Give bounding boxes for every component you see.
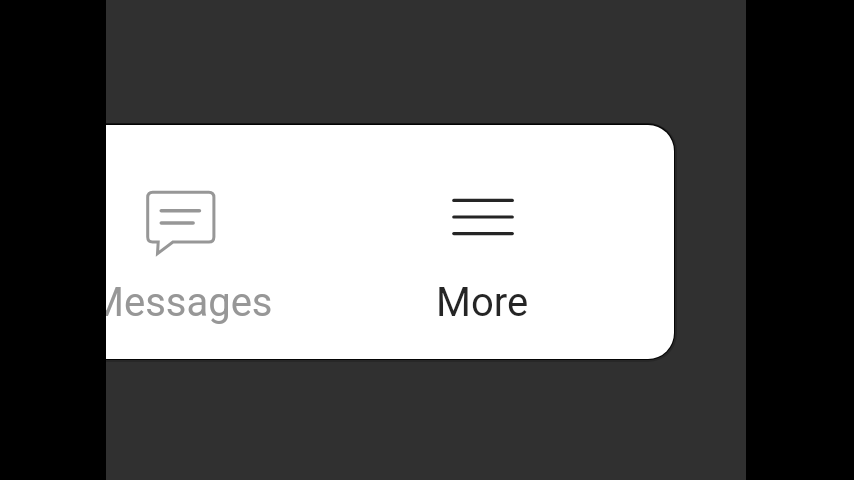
other: More <box>447 181 519 261</box>
staticText: More <box>436 279 529 326</box>
button[interactable]: More <box>332 125 633 359</box>
button[interactable]: Messages <box>30 125 331 359</box>
other: Messages <box>145 181 217 261</box>
staticText: Messages <box>89 279 273 326</box>
